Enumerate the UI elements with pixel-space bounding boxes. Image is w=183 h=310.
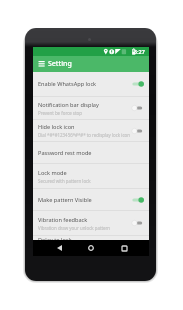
staticText: Vibration feedback: [38, 216, 88, 224]
button[interactable]: Hide lock icon: [33, 120, 149, 141]
button[interactable]: Toggle off: [132, 126, 144, 136]
button[interactable]: Toggle on: [132, 79, 144, 89]
button[interactable]: Toggle off: [132, 103, 144, 113]
button[interactable]: Lock mode: [33, 164, 149, 188]
button[interactable]: Open navigation drawer: [33, 56, 46, 72]
staticText: Make pattern Visible: [38, 196, 92, 204]
staticText: Hide lock icon: [38, 123, 75, 131]
button[interactable]: Home: [84, 241, 98, 255]
button[interactable]: Make pattern Visible: [33, 189, 149, 210]
staticText: Prevent be force stop: [38, 110, 82, 116]
button[interactable]: Back: [52, 241, 66, 255]
button[interactable]: Password rest mode: [33, 142, 149, 163]
staticText: Delay to lock: [38, 236, 72, 240]
button[interactable]: Toggle off: [132, 218, 144, 228]
staticText: Setting: [48, 59, 72, 69]
staticText: Lock mode: [38, 169, 67, 177]
button[interactable]: Notification bar display: [33, 97, 149, 119]
button[interactable]: Delay to lock: [33, 236, 149, 240]
button[interactable]: Toggle on: [132, 195, 144, 205]
staticText: Notification bar display: [38, 101, 99, 109]
button[interactable]: Vibration feedback: [33, 211, 149, 235]
staticText: Secured with pattern lock: [38, 178, 91, 184]
button[interactable]: Recent apps: [117, 241, 131, 255]
staticText: 3:27: [134, 48, 145, 55]
staticText: Vibration draw your unlock pattern: [38, 225, 111, 231]
staticText: Dial *#*#123456*#*#* to redisplay lock i…: [38, 132, 130, 138]
staticText: Password rest mode: [38, 149, 92, 157]
staticText: Enable WhatsApp lock: [38, 80, 97, 88]
button[interactable]: Enable WhatsApp lock: [33, 72, 149, 96]
